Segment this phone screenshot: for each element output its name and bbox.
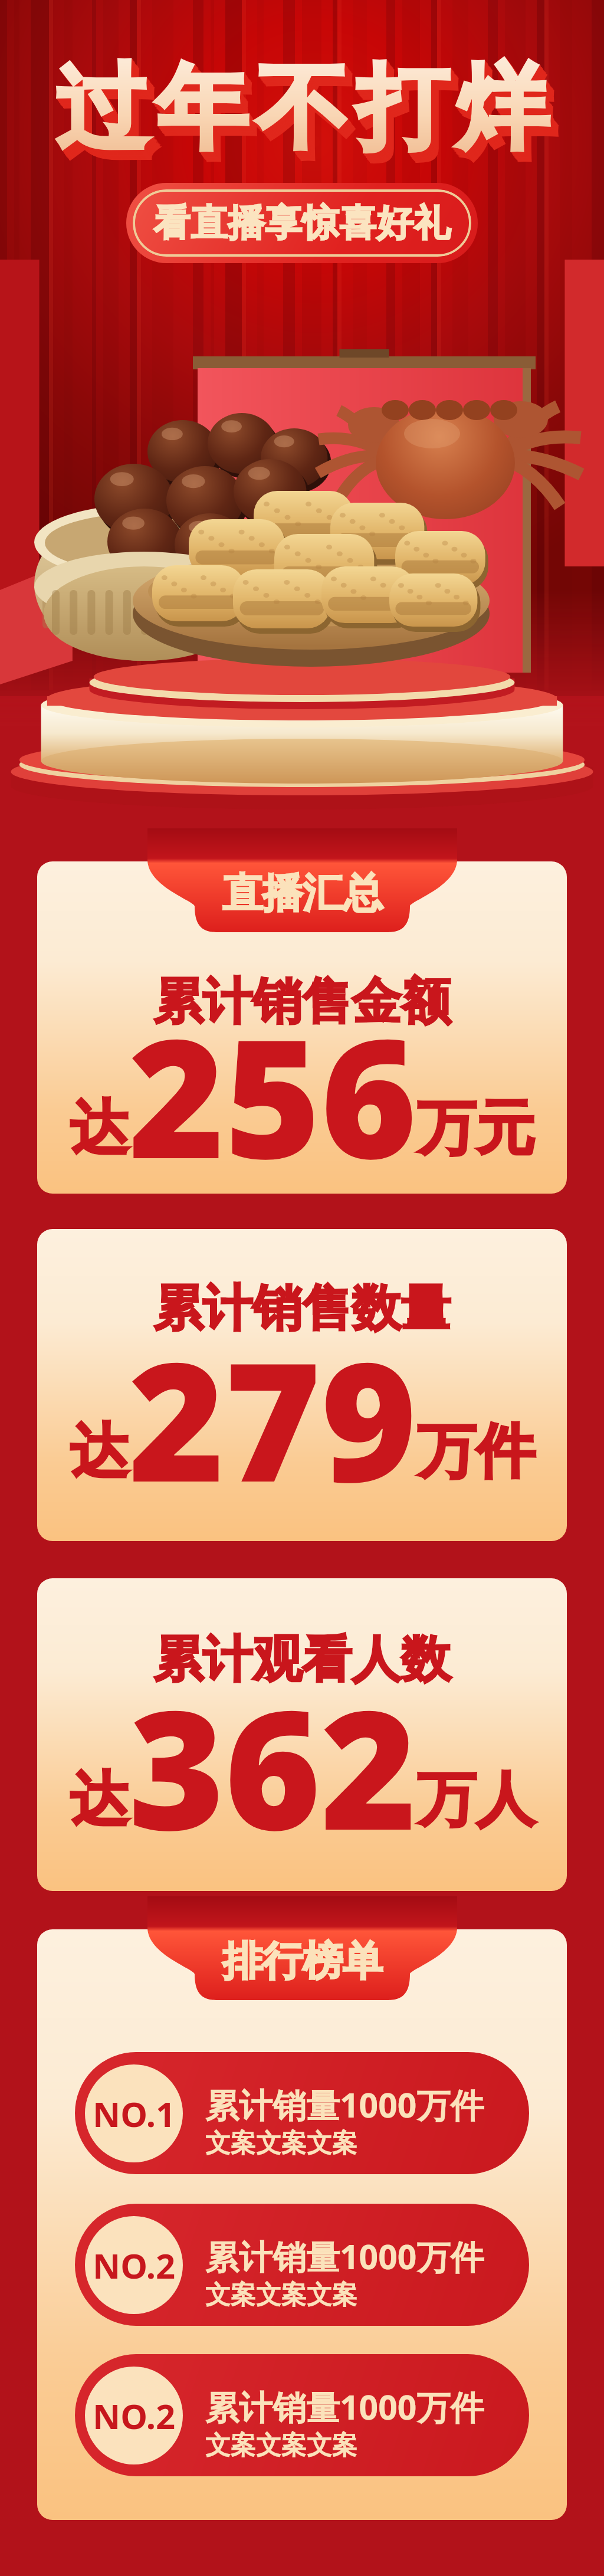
staticText: 过年不打烊 (54, 55, 556, 171)
staticText: 过年不打烊 (54, 54, 555, 170)
staticText: 累计销量1000万件 (205, 2384, 484, 2430)
staticText: 达 (70, 1763, 129, 1837)
staticText: 过年不打烊 (52, 52, 554, 168)
staticText: 过年不打烊 (55, 55, 556, 172)
button[interactable]: 看直播享惊喜好礼 (126, 183, 478, 263)
button[interactable]: NO.1 (75, 2052, 529, 2174)
button[interactable]: 排行榜单 (147, 1896, 457, 2000)
staticText: 万件 (417, 1415, 535, 1489)
staticText: 362 (129, 1654, 417, 1878)
button[interactable]: 累计销售金额 (37, 861, 567, 1194)
staticText: 过年不打烊 (58, 59, 559, 175)
button[interactable]: NO.2 (75, 2354, 529, 2476)
staticText: NO.2 (93, 2242, 176, 2289)
staticText: 256 (129, 983, 417, 1194)
staticText: 看直播享惊喜好礼 (153, 200, 451, 246)
button[interactable]: 直播汇总 (147, 828, 457, 932)
button[interactable]: NO.2 (75, 2204, 529, 2326)
staticText: NO.2 (93, 2393, 176, 2439)
staticText: 过年不打烊 (57, 58, 558, 174)
staticText: 累计观看人数 (153, 1628, 451, 1691)
staticText: 达 (70, 1092, 129, 1166)
staticText: 过年不打烊 (51, 51, 553, 167)
staticText: 累计销售金额 (153, 971, 451, 1033)
staticText: 万人 (417, 1763, 535, 1837)
staticText: 过年不打烊 (57, 58, 559, 175)
staticText: 累计销量1000万件 (205, 2233, 484, 2279)
staticText: 过年不打烊 (56, 57, 557, 173)
staticText: 文案文案文案 (205, 2430, 357, 2462)
staticText: 直播汇总 (222, 869, 383, 919)
staticText: NO.1 (93, 2090, 176, 2137)
staticText: 万元 (417, 1092, 535, 1166)
staticText: 过年不打烊 (53, 53, 554, 169)
staticText: 过年不打烊 (59, 61, 560, 177)
staticText: 文案文案文案 (205, 2128, 357, 2159)
staticText: 过年不打烊 (52, 51, 553, 168)
staticText: 累计销售数量 (153, 1277, 451, 1340)
button[interactable]: 累计销售数量 (37, 1229, 567, 1541)
staticText: 279 (129, 1306, 417, 1530)
staticText: 过年不打烊 (55, 57, 557, 173)
staticText: 达 (70, 1415, 129, 1489)
staticText: 过年不打烊 (58, 60, 560, 176)
staticText: 排行榜单 (222, 1936, 383, 1987)
staticText: 累计销量1000万件 (205, 2082, 484, 2128)
staticText: 过年不打烊 (54, 54, 556, 171)
staticText: 文案文案文案 (205, 2279, 357, 2311)
button[interactable]: 累计观看人数 (37, 1578, 567, 1891)
